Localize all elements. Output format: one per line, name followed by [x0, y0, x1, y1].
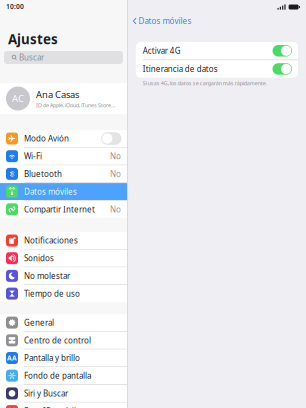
- staticText: No: [110, 204, 121, 215]
- staticText: Bluetooth: [24, 169, 62, 179]
- staticText: ID de Apple, iCloud, iTunes Store…: [36, 102, 115, 109]
- button[interactable]: Notificaciones: [0, 232, 127, 249]
- staticText: Centro de control: [24, 335, 91, 346]
- staticText: Pantalla y brillo: [24, 353, 80, 363]
- button[interactable]: Datos móviles: [128, 14, 306, 28]
- staticText: AA: [7, 354, 17, 362]
- button[interactable]: Compartir Internet: [0, 201, 127, 218]
- staticText: Ajustes: [8, 30, 58, 48]
- button[interactable]: AA: [0, 349, 127, 366]
- button[interactable]: Activar 4G: [136, 42, 298, 59]
- button[interactable]: Modo Avión: [0, 130, 127, 147]
- staticText: General: [24, 317, 54, 328]
- button[interactable]: Buscar: [4, 51, 123, 64]
- button[interactable]: No molestar: [0, 267, 127, 284]
- staticText: Buscar: [19, 52, 44, 63]
- staticText: No: [110, 151, 121, 161]
- button[interactable]: Centro de control: [0, 332, 127, 349]
- staticText: Siri y Buscar: [24, 388, 68, 399]
- button[interactable]: Datos móviles: [0, 183, 127, 200]
- staticText: Wi-Fi: [24, 151, 42, 161]
- staticText: Tiempo de uso: [24, 288, 80, 299]
- button[interactable]: Wi-Fi: [0, 148, 127, 165]
- staticText: AC: [12, 92, 24, 105]
- staticText: Datos móviles: [24, 186, 77, 197]
- staticText: No molestar: [24, 271, 70, 281]
- staticText: Si usas 4G, los datos se cargarán más rá…: [143, 80, 267, 87]
- button[interactable]: Itinerancia de datos: [136, 60, 298, 78]
- staticText: Compartir Internet: [24, 204, 95, 215]
- button[interactable]: Fondo de pantalla: [0, 367, 127, 384]
- staticText: No: [110, 169, 121, 179]
- button[interactable]: General: [0, 314, 127, 331]
- button[interactable]: Siri y Buscar: [0, 385, 127, 402]
- staticText: Face ID y código: [24, 406, 86, 408]
- staticText: Ana Casas: [36, 88, 79, 101]
- staticText: 10:00: [6, 2, 24, 11]
- staticText: Datos móviles: [138, 16, 191, 26]
- staticText: Itinerancia de datos: [143, 64, 218, 74]
- button[interactable]: Face ID y código: [0, 403, 127, 408]
- button[interactable]: Bluetooth: [0, 165, 127, 182]
- staticText: Modo Avión: [24, 133, 69, 144]
- staticText: Sonidos: [24, 253, 54, 263]
- staticText: Notificaciones: [24, 235, 78, 246]
- button[interactable]: Tiempo de uso: [0, 285, 127, 302]
- staticText: Activar 4G: [143, 45, 181, 56]
- button[interactable]: AC: [0, 83, 127, 114]
- button[interactable]: Sonidos: [0, 250, 127, 267]
- staticText: Fondo de pantalla: [24, 370, 91, 381]
